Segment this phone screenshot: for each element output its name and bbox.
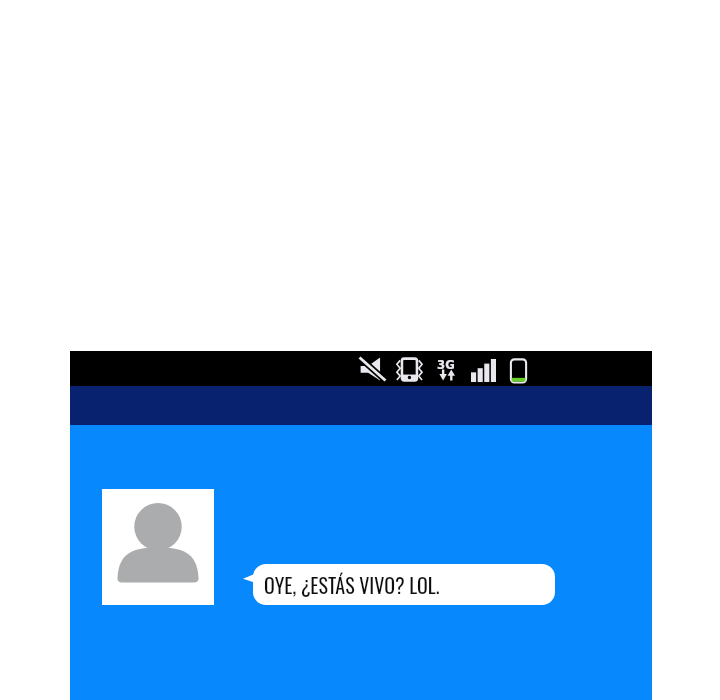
button[interactable]: Contact avatar bbox=[102, 489, 214, 605]
button[interactable]: Vibrate bbox=[394, 356, 424, 382]
button[interactable]: Battery bbox=[509, 357, 528, 383]
button[interactable]: Silent mode bbox=[359, 357, 386, 381]
staticText: OYE, ¿ESTÁS VIVO? LOL. bbox=[264, 570, 440, 600]
button[interactable]: OYE, ¿ESTÁS VIVO? LOL. bbox=[253, 564, 555, 605]
button[interactable]: 3G mobile data bbox=[434, 357, 458, 381]
button[interactable]: Signal strength bbox=[471, 359, 496, 382]
staticText: 3G bbox=[437, 357, 455, 369]
